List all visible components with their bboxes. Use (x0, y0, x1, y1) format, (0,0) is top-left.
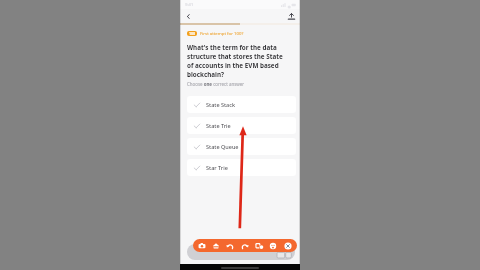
staticText: State Stack (206, 101, 236, 108)
button[interactable]: Brush (209, 239, 222, 252)
button[interactable]: State Trie (187, 117, 296, 134)
button[interactable]: Share (286, 11, 297, 22)
staticText: Choose one correct answer (187, 81, 245, 87)
button[interactable]: Close (281, 239, 294, 252)
staticText: Star Trie (206, 164, 228, 171)
staticText: First attempt for 100? (200, 30, 244, 36)
staticText: 100 (189, 31, 196, 36)
button[interactable]: Screenshot (195, 239, 208, 252)
button[interactable]: State Queue (187, 138, 296, 155)
button[interactable]: Emoji (266, 239, 279, 252)
staticText: What's the term for the data structure t… (187, 43, 283, 79)
staticText: State Queue (206, 143, 239, 150)
button[interactable]: Redo (238, 239, 251, 252)
staticText: State Trie (206, 122, 231, 129)
staticText: 9:41 (185, 2, 194, 8)
button[interactable]: Sticker (252, 239, 265, 252)
button[interactable]: Star Trie (187, 159, 296, 176)
button[interactable]: Back (183, 11, 194, 22)
button[interactable]: State Stack (187, 96, 296, 113)
button[interactable]: Undo (223, 239, 236, 252)
